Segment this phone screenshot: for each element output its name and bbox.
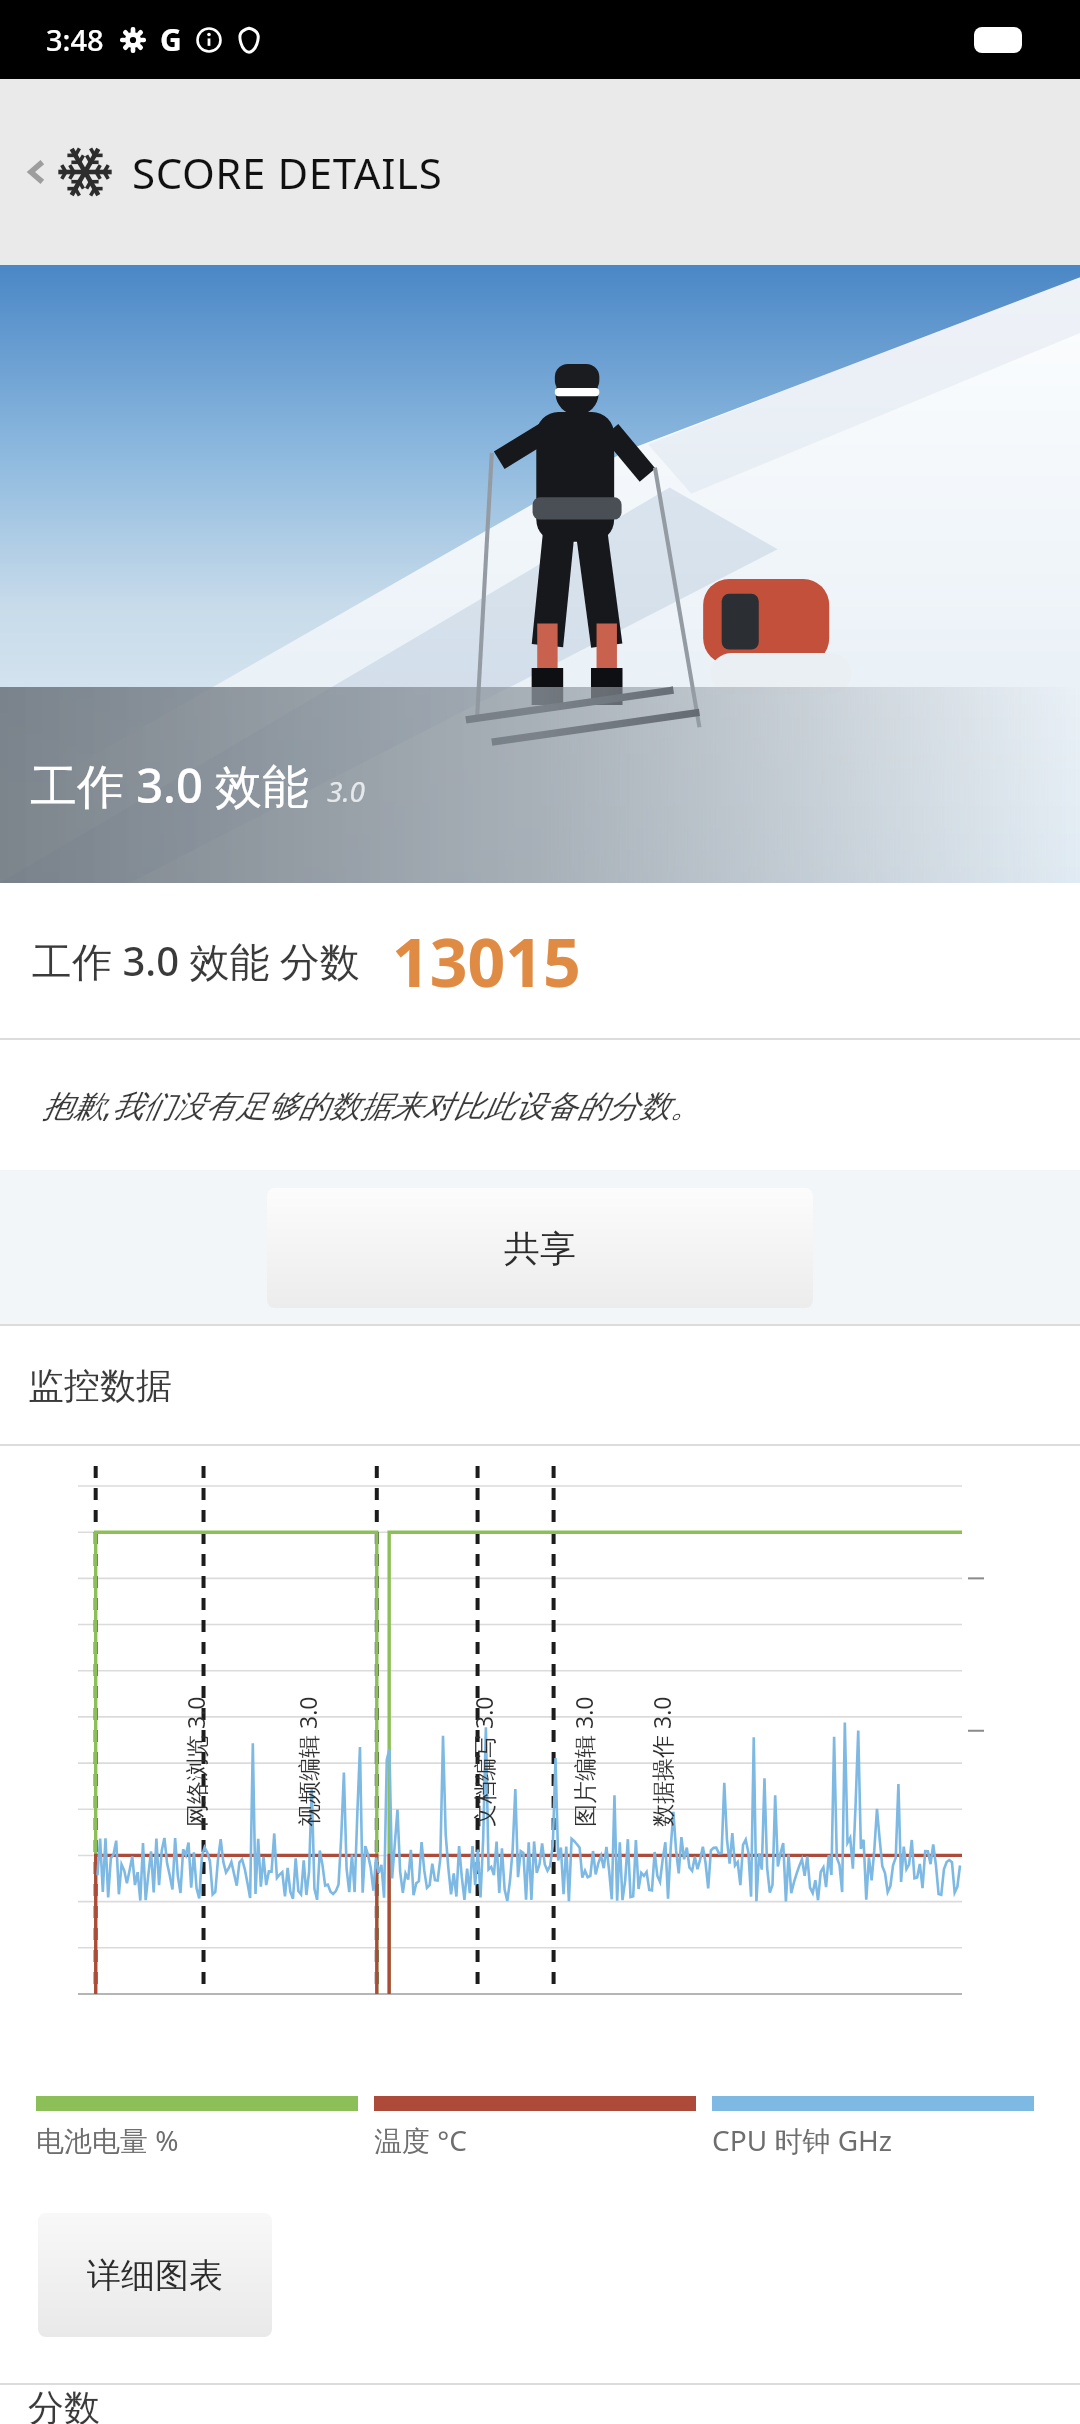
- staticText: 分数: [28, 2385, 100, 2424]
- staticText: 13015: [392, 916, 581, 1006]
- staticText: 共享: [504, 1226, 576, 1271]
- staticText: 图片编辑 3.0: [568, 1696, 599, 1827]
- button[interactable]: 共享: [267, 1188, 813, 1308]
- staticText: 3.0: [327, 772, 366, 810]
- staticText: 监控数据: [28, 1363, 172, 1408]
- staticText: 电池电量 %: [36, 2121, 179, 2159]
- staticText: 3:48: [46, 20, 104, 59]
- staticText: G: [160, 19, 182, 60]
- staticText: 网络浏览 3.0: [180, 1696, 211, 1827]
- staticText: CPU 时钟 GHz: [712, 2121, 892, 2159]
- staticText: 工作 3.0 效能: [30, 753, 309, 817]
- staticText: 工作 3.0 效能 分数: [32, 933, 360, 988]
- staticText: 数据操作 3.0: [646, 1696, 677, 1827]
- staticText: 详细图表: [87, 2254, 223, 2297]
- staticText: 温度 °C: [374, 2121, 467, 2159]
- button[interactable]: Back: [10, 133, 451, 211]
- staticText: SCORE DETAILS: [132, 144, 443, 201]
- staticText: 视频编辑 3.0: [292, 1696, 323, 1827]
- button[interactable]: 详细图表: [38, 2213, 272, 2337]
- staticText: 文档编写 3.0: [468, 1696, 499, 1827]
- staticText: 抱歉,我们没有足够的数据来对比此设备的分数。: [42, 1084, 701, 1126]
